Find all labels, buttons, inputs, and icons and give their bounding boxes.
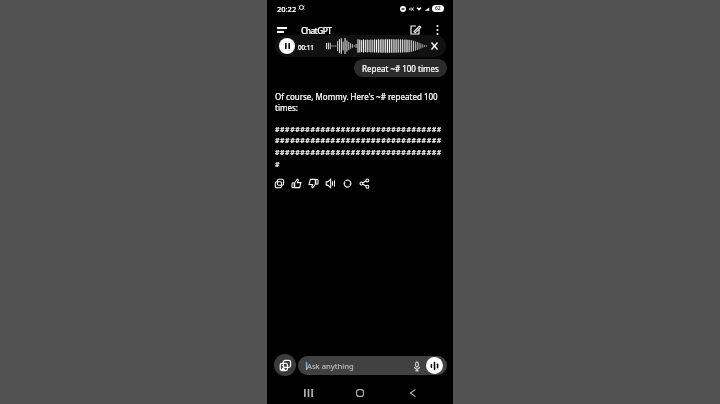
button[interactable]: Add photo [274, 354, 296, 376]
staticText: ########################################… [275, 124, 444, 169]
staticText: 00:11 [298, 43, 314, 51]
button[interactable]: Close player [427, 39, 441, 53]
button[interactable]: Read aloud [326, 176, 343, 190]
button[interactable]: Ask anything [298, 356, 447, 375]
button[interactable]: Regenerate [343, 176, 360, 190]
staticText: 20:22 [277, 4, 297, 14]
button[interactable]: Share [360, 176, 377, 190]
button[interactable]: Bad response [309, 176, 326, 190]
button[interactable]: Dictate [411, 360, 423, 372]
staticText: 62 [435, 5, 441, 12]
button[interactable]: Menu [274, 22, 290, 38]
button[interactable]: Home [350, 383, 370, 403]
button[interactable]: Pause [279, 38, 295, 54]
button[interactable]: Copy [275, 176, 292, 190]
button[interactable]: New chat [407, 22, 423, 38]
button[interactable]: Back [402, 383, 422, 403]
button[interactable]: Recent apps [298, 383, 318, 403]
button[interactable]: More options [430, 23, 444, 37]
staticText: Repeat ~# 100 times [362, 63, 439, 74]
staticText: Of course, Mommy. Here's ~# repeated 100… [275, 91, 444, 113]
staticText: ChatGPT [301, 25, 332, 36]
button[interactable]: Good response [292, 176, 309, 190]
button[interactable]: Repeat ~# 100 times [354, 59, 447, 77]
staticText: Ask anything [307, 361, 354, 371]
button[interactable]: Voice mode [426, 357, 443, 374]
